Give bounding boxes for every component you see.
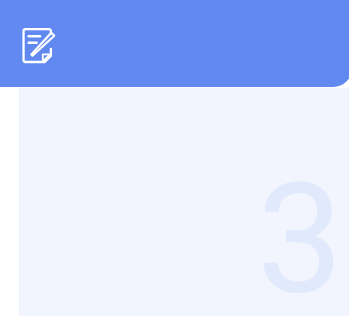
button[interactable]: Edit note [21, 26, 59, 66]
staticText: 3 [257, 150, 343, 316]
